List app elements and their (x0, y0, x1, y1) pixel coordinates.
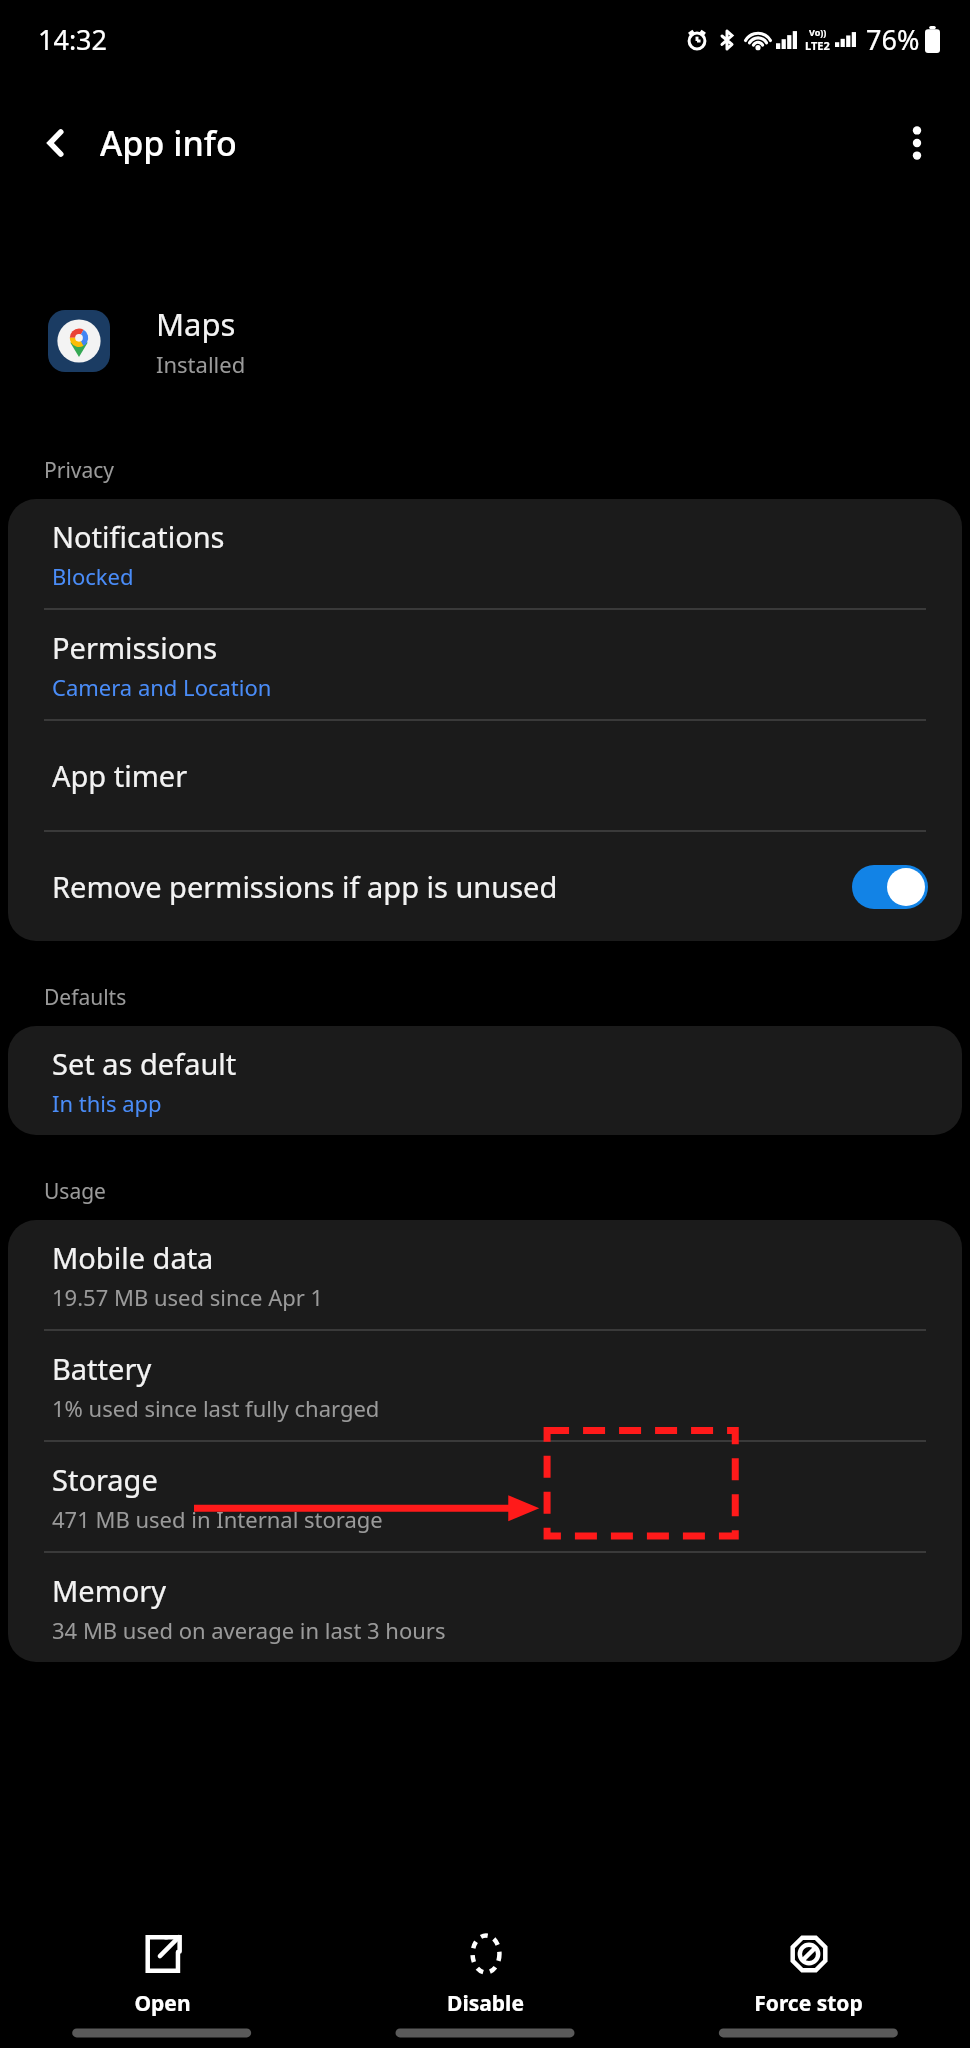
button[interactable]: Remove permissions if app is unused (8, 832, 962, 941)
button[interactable]: App timer (8, 721, 962, 830)
staticText: LTE2 (805, 38, 830, 53)
staticText: App info (100, 120, 237, 166)
staticText: 76% (866, 21, 920, 58)
button[interactable]: Notifications (8, 499, 962, 608)
staticText: Notifications (52, 517, 225, 556)
staticText: App timer (52, 756, 188, 795)
button[interactable]: Force stop (647, 1920, 970, 2030)
staticText: Remove permissions if app is unused (52, 867, 558, 906)
staticText: Disable (447, 1989, 524, 2018)
staticText: Open (134, 1989, 191, 2018)
staticText: Mobile data (52, 1238, 214, 1277)
button[interactable]: Storage (8, 1442, 962, 1551)
button[interactable]: Set as default (8, 1026, 962, 1135)
staticText: Camera and Location (52, 672, 272, 702)
staticText: Vo)) (809, 26, 827, 38)
staticText: In this app (52, 1088, 162, 1118)
staticText: Defaults (44, 983, 127, 1012)
button[interactable]: Back (24, 111, 88, 175)
button[interactable]: Memory (8, 1553, 962, 1662)
button[interactable]: Maps (0, 286, 970, 396)
staticText: Maps (156, 303, 236, 345)
staticText: Usage (44, 1177, 106, 1206)
staticText: Privacy (44, 456, 115, 485)
staticText: 14:32 (38, 21, 108, 58)
staticText: Set as default (52, 1044, 237, 1083)
staticText: Memory (52, 1571, 167, 1610)
button[interactable]: Mobile data (8, 1220, 962, 1329)
staticText: 471 MB used in Internal storage (52, 1504, 383, 1534)
staticText: Battery (52, 1349, 152, 1388)
button[interactable]: Open (0, 1920, 324, 2030)
button[interactable]: Permissions (8, 610, 962, 719)
staticText: 1% used since last fully charged (52, 1393, 380, 1423)
staticText: 34 MB used on average in last 3 hours (52, 1615, 446, 1645)
button[interactable]: More options (886, 112, 948, 174)
staticText: Force stop (754, 1989, 863, 2018)
staticText: Blocked (52, 561, 134, 591)
staticText: Permissions (52, 628, 218, 667)
button[interactable]: Battery (8, 1331, 962, 1440)
staticText: Storage (52, 1460, 158, 1499)
button[interactable] (852, 865, 928, 909)
button[interactable]: Disable (324, 1920, 647, 2030)
staticText: 19.57 MB used since Apr 1 (52, 1282, 324, 1312)
staticText: Installed (156, 349, 246, 379)
